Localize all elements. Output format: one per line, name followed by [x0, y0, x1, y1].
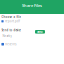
- button[interactable]: SEND: [35, 30, 45, 34]
- staticText: Recents: [5, 42, 16, 46]
- staticText: SEND: [37, 30, 43, 33]
- button[interactable]: Recents: [1, 42, 63, 46]
- staticText: Choose a file: [1, 15, 21, 19]
- staticText: report.pdf: [5, 19, 20, 23]
- staticText: Send to device: [1, 28, 21, 32]
- staticText: Share Files: [22, 3, 42, 8]
- staticText: Nearby: [2, 34, 11, 38]
